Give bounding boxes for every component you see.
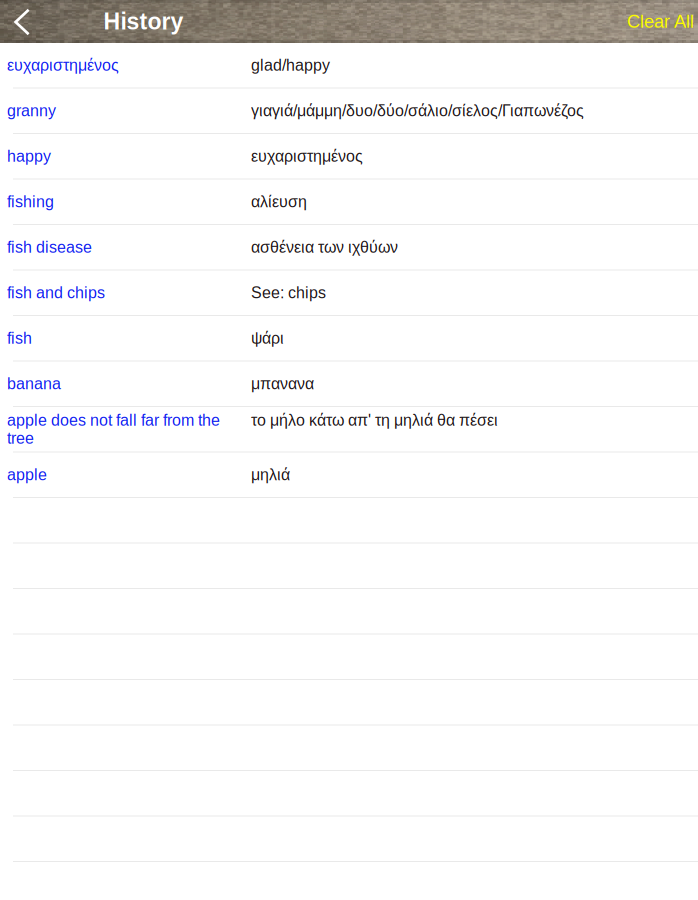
staticText: αλίευση xyxy=(251,193,307,211)
staticText: ευχαριστημένος xyxy=(7,56,119,74)
staticText: μπανανα xyxy=(251,375,314,393)
staticText: Clear All xyxy=(627,11,694,32)
staticText: fishing xyxy=(7,193,54,211)
button[interactable]: fish and chips xyxy=(0,270,698,316)
button[interactable]: granny xyxy=(0,88,698,134)
button[interactable]: ευχαριστημένος xyxy=(0,43,698,88)
staticText: fish and chips xyxy=(7,284,105,302)
staticText: fish disease xyxy=(7,238,92,256)
button[interactable] xyxy=(0,634,698,680)
staticText: banana xyxy=(7,375,61,393)
staticText: γιαγιά/μάμμη/δυο/δύο/σάλιο/σίελος/Γιαπων… xyxy=(251,102,584,120)
button[interactable]: fish xyxy=(0,316,698,361)
staticText: ασθένεια των ιχθύων xyxy=(251,238,398,256)
button[interactable]: apple xyxy=(0,452,698,498)
button[interactable]: Clear All xyxy=(627,0,698,43)
staticText: το μήλο κάτω απ' τη μηλιά θα πέσει xyxy=(251,411,498,429)
staticText: granny xyxy=(7,102,56,120)
button[interactable]: Back xyxy=(0,0,46,43)
button[interactable]: apple does not fall far from the tree xyxy=(0,407,698,452)
staticText: μηλιά xyxy=(251,466,290,484)
button[interactable] xyxy=(0,816,698,862)
staticText: ψάρι xyxy=(251,329,284,347)
button[interactable]: fishing xyxy=(0,179,698,225)
button[interactable] xyxy=(0,543,698,589)
staticText: ευχαριστημένος xyxy=(251,147,363,165)
staticText: fish xyxy=(7,329,32,347)
staticText: glad/happy xyxy=(251,56,330,74)
button[interactable]: happy xyxy=(0,134,698,179)
button[interactable] xyxy=(0,725,698,771)
staticText: See: chips xyxy=(251,284,326,302)
staticText: happy xyxy=(7,147,51,165)
staticText: apple xyxy=(7,466,47,484)
button[interactable]: fish disease xyxy=(0,225,698,270)
staticText: apple does not fall far from the tree xyxy=(7,411,220,447)
staticText: History xyxy=(103,9,183,34)
button[interactable]: banana xyxy=(0,361,698,407)
